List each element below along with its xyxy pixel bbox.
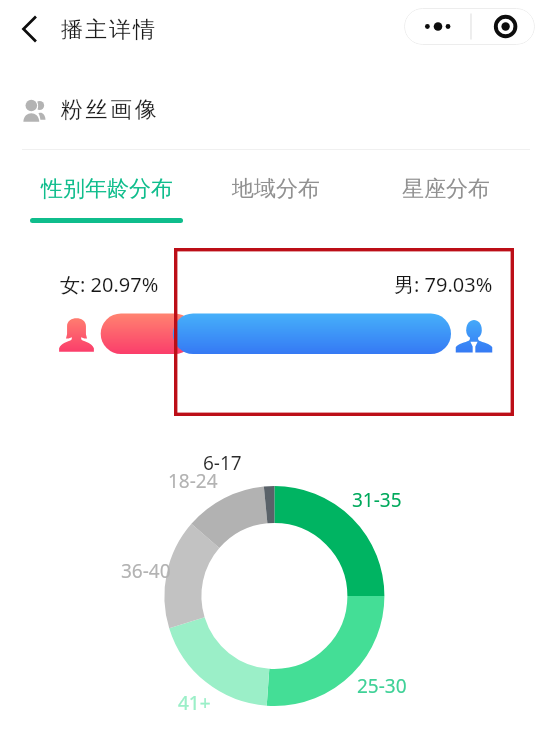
button[interactable]: 性别年龄分布 [41,175,173,203]
staticText: 18-24 [168,468,218,494]
staticText: 粉丝画像 [61,96,160,124]
button[interactable]: 星座分布 [402,175,490,203]
staticText: 36-40 [121,558,171,584]
staticText: 31-35 [352,487,402,513]
staticText: 41+ [178,690,211,716]
staticText: 6-17 [203,450,242,476]
button[interactable]: Back [6,6,52,52]
staticText: 男: 79.03% [394,271,493,298]
button[interactable]: 地域分布 [232,175,320,203]
staticText: 播主详情 [60,16,156,44]
staticText: 25-30 [357,673,407,699]
staticText: 女: 20.97% [60,271,159,298]
button[interactable]: More options [404,8,535,45]
